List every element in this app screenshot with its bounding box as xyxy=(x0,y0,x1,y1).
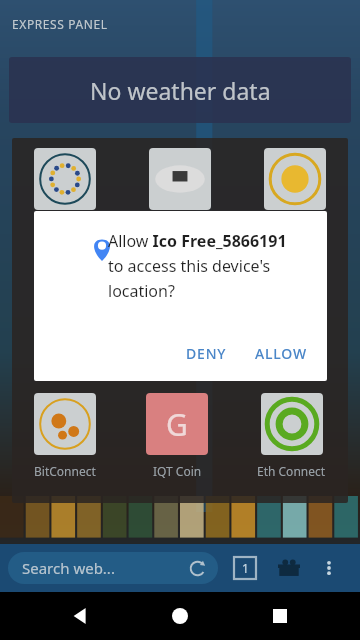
button[interactable]: Tabs xyxy=(232,555,258,581)
staticText: No weather data xyxy=(90,75,271,106)
button[interactable]: Offers xyxy=(276,555,302,581)
button[interactable]: DENY xyxy=(176,336,237,371)
button[interactable]: Eth Connect xyxy=(261,393,323,455)
button[interactable]: IQT Coin xyxy=(146,393,208,455)
button[interactable]: Back xyxy=(60,596,100,636)
button[interactable]: Recents xyxy=(260,596,300,636)
staticText: 1 xyxy=(242,560,249,576)
button[interactable]: App xyxy=(149,148,211,210)
staticText: Eth Connect xyxy=(257,463,326,479)
button[interactable]: BitConnect xyxy=(34,393,96,455)
button[interactable]: App xyxy=(34,148,96,210)
staticText: G xyxy=(166,404,188,445)
staticText: BitConnect xyxy=(34,463,96,479)
button[interactable]: More options xyxy=(316,555,342,581)
button[interactable]: ALLOW xyxy=(245,336,317,371)
button[interactable]: App xyxy=(264,148,326,210)
staticText: ALLOW xyxy=(255,344,307,363)
other: Location xyxy=(90,237,114,261)
button[interactable]: Search web... xyxy=(8,552,218,584)
staticText: EXPRESS PANEL xyxy=(12,16,108,32)
staticText: Allow Ico Free_5866191 to access this de… xyxy=(108,230,294,301)
staticText: Search web... xyxy=(22,558,115,578)
staticText: IQT Coin xyxy=(153,463,202,479)
button[interactable]: No weather data xyxy=(9,57,351,123)
button[interactable]: Home xyxy=(160,596,200,636)
staticText: DENY xyxy=(186,344,227,363)
